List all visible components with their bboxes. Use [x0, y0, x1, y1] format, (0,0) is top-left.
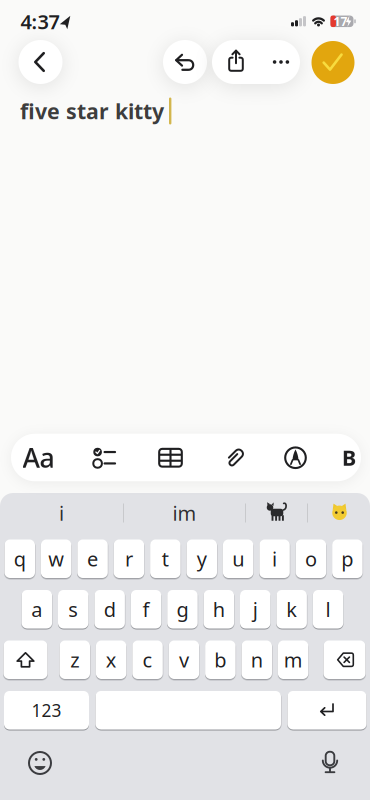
button[interactable]: n	[241, 640, 272, 679]
button[interactable]: y	[186, 539, 217, 578]
button[interactable]: p	[332, 539, 363, 578]
button[interactable]: Share	[214, 40, 258, 84]
button[interactable]: l	[313, 590, 343, 628]
button[interactable]: v	[169, 640, 199, 679]
button[interactable]: Done	[311, 41, 354, 84]
staticText: i	[272, 545, 277, 572]
button[interactable]: e	[77, 539, 108, 578]
staticText: f	[142, 596, 149, 623]
staticText: t	[162, 545, 169, 572]
button[interactable]: im	[125, 495, 243, 531]
button[interactable]: Delete	[323, 640, 365, 679]
staticText: b	[214, 646, 226, 673]
button[interactable]: z	[59, 640, 90, 679]
staticText: z	[70, 646, 79, 673]
button[interactable]: Attach	[213, 434, 257, 481]
button[interactable]: Dictation	[308, 743, 352, 783]
staticText: n	[251, 646, 263, 673]
button[interactable]: Sketch	[273, 434, 317, 481]
button[interactable]: Table	[148, 434, 192, 481]
button[interactable]: o	[296, 539, 326, 578]
staticText: o	[305, 545, 317, 572]
staticText: s	[68, 596, 78, 623]
button[interactable]: t	[150, 539, 181, 578]
staticText: im	[172, 500, 196, 526]
staticText: c	[143, 646, 153, 673]
button[interactable]: c	[132, 640, 163, 679]
button[interactable]: j	[240, 590, 270, 628]
button[interactable]: More	[259, 40, 303, 84]
button[interactable]: Return	[287, 691, 366, 729]
staticText: x	[106, 646, 117, 673]
button[interactable]: w	[41, 539, 71, 578]
button[interactable]: Shift	[3, 640, 47, 679]
staticText: p	[341, 545, 353, 572]
button[interactable]: u	[223, 539, 253, 578]
button[interactable]: x	[96, 640, 126, 679]
button[interactable]: Text style	[16, 434, 60, 481]
staticText: l	[326, 596, 331, 623]
staticText: j	[253, 596, 258, 623]
staticText: u	[232, 545, 244, 572]
button[interactable]: Bold	[334, 434, 364, 481]
staticText: m	[284, 646, 303, 673]
button[interactable]: a	[22, 590, 52, 628]
staticText: q	[14, 545, 26, 572]
staticText: g	[176, 596, 188, 623]
button[interactable]: Space	[95, 691, 281, 729]
staticText: five star kitty	[20, 97, 164, 125]
staticText: 123	[31, 699, 61, 722]
staticText: r	[125, 545, 133, 572]
staticText: y	[197, 545, 207, 572]
staticText: B	[342, 443, 356, 472]
staticText: h	[213, 596, 225, 623]
button[interactable]: d	[94, 590, 125, 628]
button[interactable]: s	[58, 590, 88, 628]
button[interactable]: i	[1, 495, 121, 531]
button[interactable]: g	[167, 590, 198, 628]
staticText: k	[286, 596, 297, 623]
button[interactable]: h	[204, 590, 234, 628]
button[interactable]: r	[114, 539, 144, 578]
staticText: e	[87, 545, 98, 572]
button[interactable]: b	[205, 640, 236, 679]
button[interactable]: Black cat emoji	[247, 495, 305, 531]
staticText: a	[31, 596, 42, 623]
button[interactable]: Checklist	[82, 434, 126, 481]
button[interactable]: Undo	[163, 40, 207, 84]
staticText: Aa	[22, 440, 54, 475]
button[interactable]: Numbers	[4, 691, 89, 729]
staticText: d	[104, 596, 116, 623]
button[interactable]: k	[276, 590, 307, 628]
staticText: i	[59, 500, 64, 526]
button[interactable]: q	[4, 539, 35, 578]
staticText: w	[48, 545, 64, 572]
button[interactable]: Emoji	[18, 743, 62, 783]
staticText: v	[179, 646, 189, 673]
button[interactable]: f	[131, 590, 161, 628]
button[interactable]: i	[259, 539, 290, 578]
staticText: 4:37	[20, 8, 59, 35]
button[interactable]: Back	[18, 40, 62, 84]
button[interactable]: m	[278, 640, 308, 679]
button[interactable]: Cat face emoji	[310, 495, 368, 531]
staticText: 17	[333, 13, 347, 29]
